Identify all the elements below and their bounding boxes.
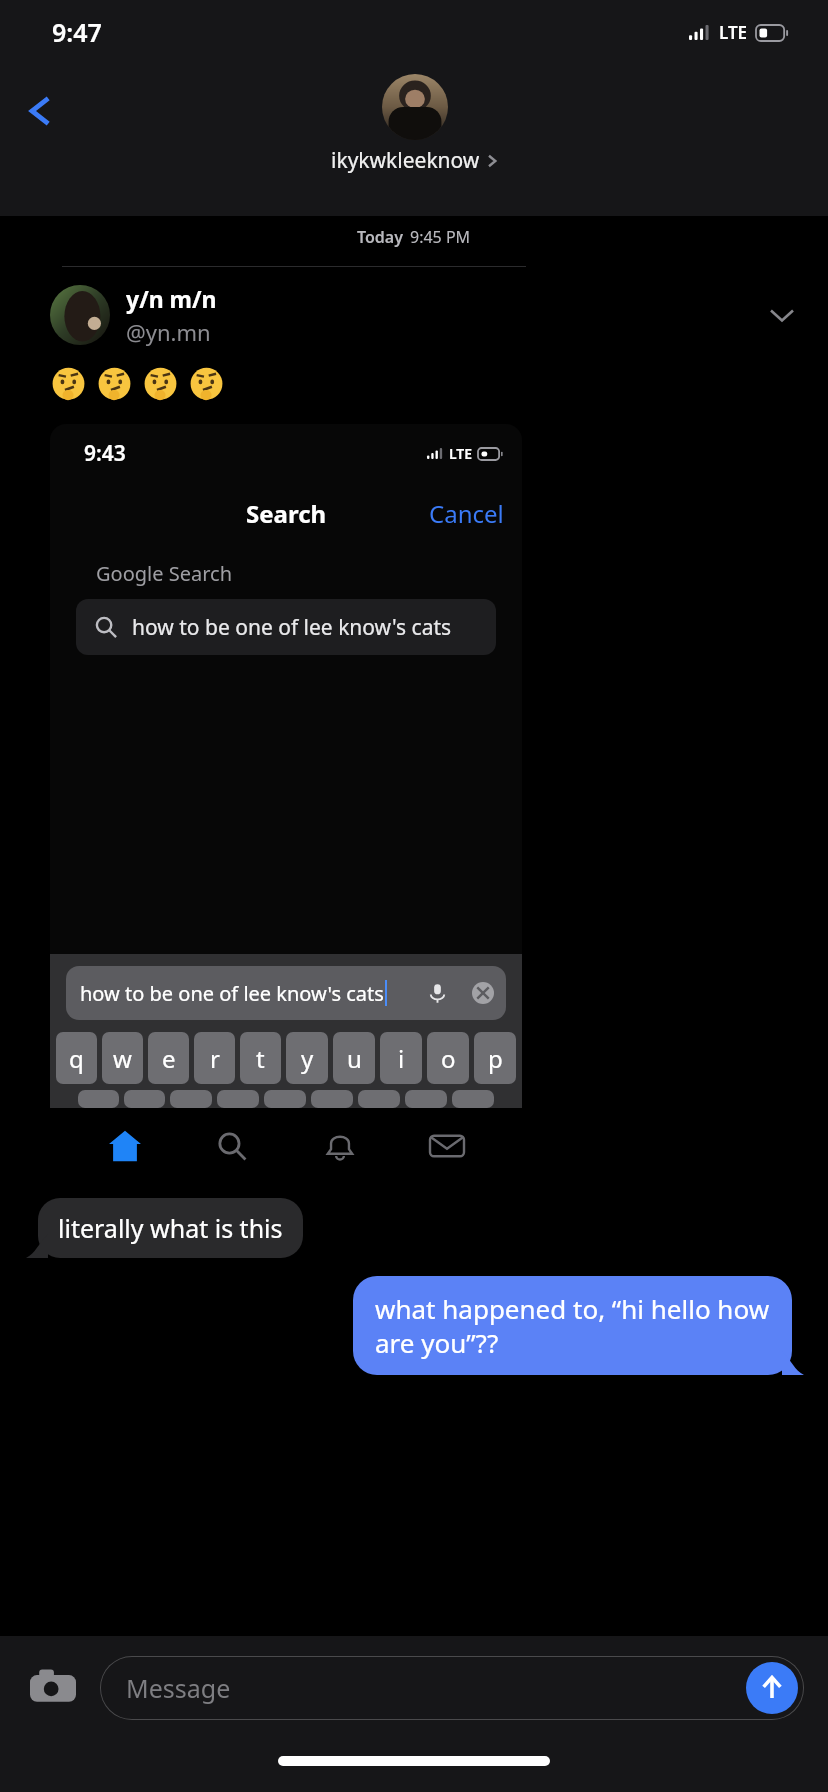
- staticText: y/n m/n: [126, 283, 217, 314]
- staticText: LTE: [449, 444, 473, 463]
- staticText: r: [210, 1042, 220, 1075]
- staticText: 9:45 PM: [410, 226, 471, 248]
- button[interactable]: Notifications: [308, 1114, 372, 1178]
- staticText: w: [113, 1042, 132, 1075]
- staticText: Today: [357, 226, 404, 248]
- staticText: Cancel: [429, 497, 504, 530]
- staticText: how to be one of lee know's cats: [132, 613, 452, 642]
- button[interactable]: ikykwkleeknow: [331, 74, 498, 175]
- button[interactable]: Cancel: [429, 497, 504, 530]
- button[interactable]: e: [148, 1032, 189, 1084]
- staticText: Search: [246, 497, 327, 530]
- button[interactable]: p: [474, 1032, 516, 1084]
- button[interactable]: t: [240, 1032, 281, 1084]
- staticText: what happened to, “hi hello how are you”…: [375, 1291, 770, 1360]
- staticText: i: [398, 1042, 405, 1075]
- button[interactable]: how to be one of lee know's cats: [66, 966, 506, 1020]
- button[interactable]: u: [333, 1032, 375, 1084]
- button[interactable]: Home: [93, 1114, 157, 1178]
- staticText: t: [256, 1042, 265, 1075]
- button[interactable]: w: [102, 1032, 143, 1084]
- button[interactable]: y: [286, 1032, 328, 1084]
- staticText: Google Search: [96, 560, 232, 587]
- button[interactable]: what happened to, “hi hello how are you”…: [353, 1276, 792, 1375]
- staticText: ikykwkleeknow: [331, 146, 480, 175]
- button[interactable]: Message: [100, 1656, 804, 1720]
- staticText: @yn.mn: [126, 317, 211, 347]
- staticText: LTE: [719, 21, 748, 44]
- button[interactable]: q: [56, 1032, 97, 1084]
- staticText: u: [347, 1042, 362, 1075]
- staticText: 9:43: [84, 439, 126, 468]
- staticText: Message: [126, 1671, 231, 1705]
- button[interactable]: 9:43: [50, 424, 522, 1184]
- button[interactable]: Search: [200, 1114, 264, 1178]
- staticText: 9:47: [52, 15, 102, 49]
- button[interactable]: how to be one of lee know's cats: [76, 599, 496, 655]
- staticText: how to be one of lee know's cats: [80, 980, 384, 1007]
- button[interactable]: More options: [760, 293, 804, 337]
- staticText: q: [69, 1042, 84, 1075]
- staticText: y: [301, 1042, 314, 1075]
- button[interactable]: r: [194, 1032, 235, 1084]
- button[interactable]: Back: [12, 82, 70, 140]
- staticText: literally what is this: [58, 1211, 283, 1245]
- button[interactable]: o: [427, 1032, 469, 1084]
- staticText: e: [162, 1042, 176, 1075]
- staticText: p: [488, 1042, 503, 1075]
- button[interactable]: Send: [746, 1662, 798, 1714]
- button[interactable]: literally what is this: [38, 1198, 303, 1258]
- button[interactable]: i: [380, 1032, 422, 1084]
- button[interactable]: Camera: [24, 1659, 82, 1717]
- staticText: o: [441, 1042, 456, 1075]
- button[interactable]: Messages: [415, 1114, 479, 1178]
